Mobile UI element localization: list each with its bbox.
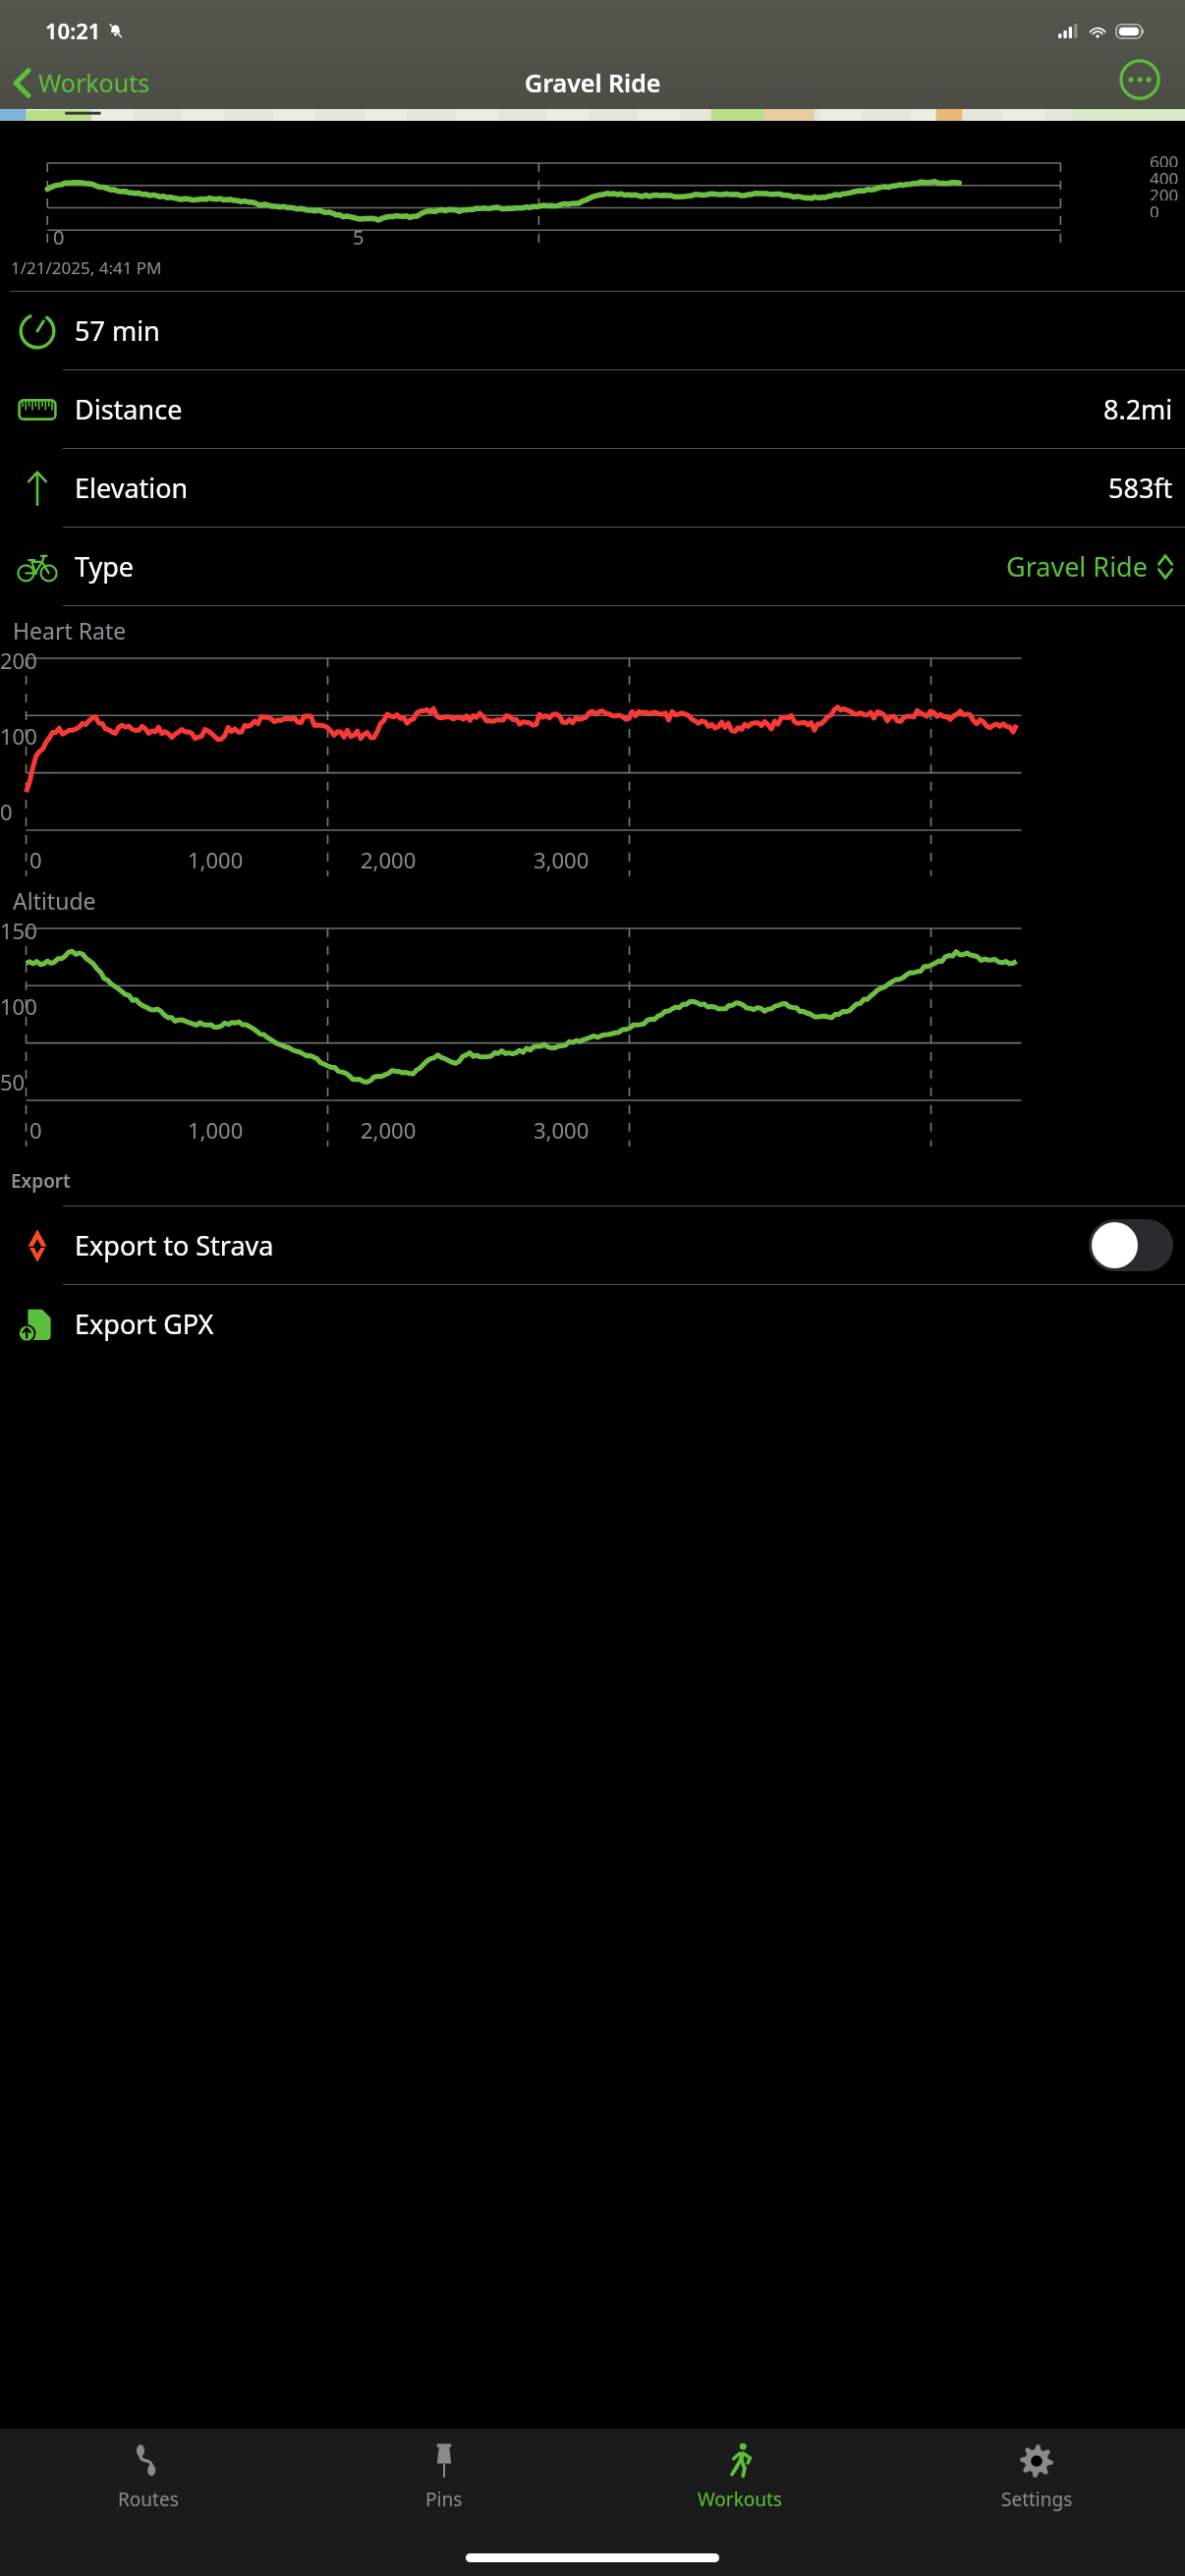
- staticText: Distance: [75, 391, 183, 427]
- staticText: Elevation: [75, 470, 189, 506]
- button[interactable]: Routes: [0, 2429, 296, 2529]
- button[interactable]: Elevation: [0, 449, 1185, 527]
- staticText: Type: [75, 548, 135, 585]
- staticText: Export to Strava: [75, 1227, 274, 1263]
- staticText: Gravel Ride: [1006, 548, 1148, 585]
- button[interactable]: Type: [0, 528, 1185, 605]
- staticText: 0: [53, 224, 65, 251]
- button[interactable]: 57 min: [0, 292, 1185, 369]
- staticText: 3,000: [534, 845, 590, 874]
- staticText: Workouts: [698, 2487, 782, 2512]
- staticText: 0: [1150, 200, 1159, 217]
- staticText: Altitude: [13, 885, 96, 916]
- staticText: 150: [0, 916, 37, 945]
- staticText: 57 min: [75, 312, 160, 349]
- staticText: Pins: [425, 2487, 463, 2512]
- staticText: 2,000: [361, 1115, 417, 1145]
- staticText: 8.2mi: [1103, 391, 1173, 427]
- button[interactable]: Workouts: [592, 2429, 888, 2529]
- button[interactable]: Distance: [0, 370, 1185, 448]
- staticText: 10:21: [45, 16, 101, 45]
- staticText: Export GPX: [75, 1306, 214, 1342]
- staticText: 100: [0, 991, 37, 1021]
- button[interactable]: More options: [1116, 56, 1163, 103]
- staticText: Gravel Ride: [525, 66, 661, 99]
- staticText: 1,000: [188, 1115, 244, 1145]
- staticText: Export: [11, 1168, 71, 1194]
- button[interactable]: Export to Strava toggle: [1089, 1219, 1173, 1271]
- staticText: 600: [1150, 150, 1179, 167]
- staticText: 200: [1150, 184, 1179, 200]
- staticText: Routes: [118, 2487, 179, 2512]
- staticText: 5: [353, 224, 365, 251]
- staticText: 100: [0, 721, 37, 751]
- button[interactable]: Pins: [296, 2429, 592, 2529]
- staticText: 2,000: [361, 845, 417, 874]
- button[interactable]: Workouts: [8, 62, 156, 103]
- staticText: Settings: [1001, 2487, 1073, 2512]
- button[interactable]: Settings: [888, 2429, 1185, 2529]
- staticText: 0: [29, 845, 42, 874]
- staticText: Heart Rate: [13, 615, 127, 645]
- staticText: 583ft: [1108, 470, 1173, 506]
- staticText: 50: [0, 1067, 26, 1096]
- staticText: 1/21/2025, 4:41 PM: [11, 256, 162, 279]
- staticText: Workouts: [38, 66, 150, 99]
- staticText: 200: [0, 645, 37, 675]
- staticText: 3,000: [534, 1115, 590, 1145]
- staticText: 1,000: [188, 845, 244, 874]
- staticText: 400: [1150, 167, 1179, 184]
- button[interactable]: Export GPX: [0, 1285, 1185, 1363]
- staticText: 0: [29, 1115, 42, 1145]
- staticText: -100: [0, 872, 44, 876]
- staticText: 0: [0, 797, 13, 826]
- button[interactable]: Export to Strava: [0, 1206, 1185, 1284]
